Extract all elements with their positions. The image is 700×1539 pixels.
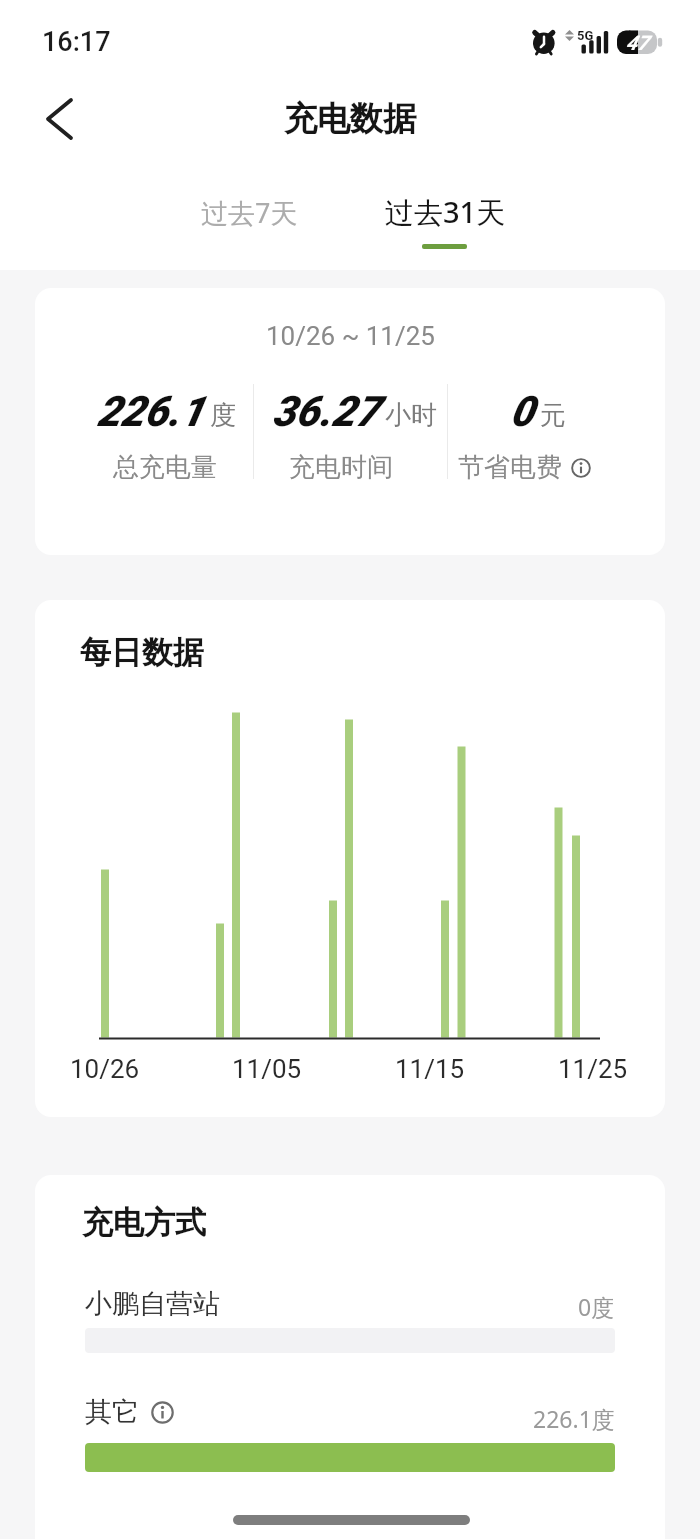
staticText: 每日数据 — [80, 633, 204, 672]
staticText: 充电方式 — [82, 1203, 206, 1242]
button[interactable]: 过去31天 — [385, 192, 506, 232]
staticText: 充电数据 — [284, 98, 416, 140]
button[interactable]: 节省电费 — [458, 451, 591, 484]
staticText: 过去7天 — [201, 194, 298, 231]
staticText: 节省电费 — [458, 451, 562, 484]
staticText: 0 — [510, 387, 534, 436]
staticText: 226.1 — [97, 387, 204, 436]
staticText: 其它 — [85, 1395, 139, 1429]
button[interactable]: 过去7天 — [201, 194, 298, 231]
staticText: 11/25 — [558, 1054, 628, 1084]
button[interactable] — [38, 95, 86, 143]
staticText: 度 — [210, 399, 236, 432]
staticText: 10/26 — [70, 1054, 140, 1084]
staticText: 总充电量 — [113, 451, 217, 484]
staticText: 11/15 — [395, 1054, 465, 1084]
staticText: 小时 — [385, 399, 437, 432]
staticText: 36.27 — [272, 387, 379, 436]
staticText: 充电时间 — [289, 451, 393, 484]
staticText: 过去31天 — [385, 192, 506, 232]
staticText: 11/05 — [232, 1054, 302, 1084]
staticText: 元 — [540, 399, 566, 432]
staticText: 0度 — [578, 1291, 615, 1322]
button[interactable]: 其它 — [85, 1395, 174, 1429]
staticText: 47 — [626, 31, 649, 54]
staticText: 5G — [577, 28, 594, 43]
staticText: 16:17 — [42, 26, 111, 58]
staticText: 226.1度 — [533, 1403, 615, 1434]
staticText: 10/26 ~ 11/25 — [266, 321, 435, 351]
staticText: 小鹏自营站 — [85, 1287, 220, 1321]
